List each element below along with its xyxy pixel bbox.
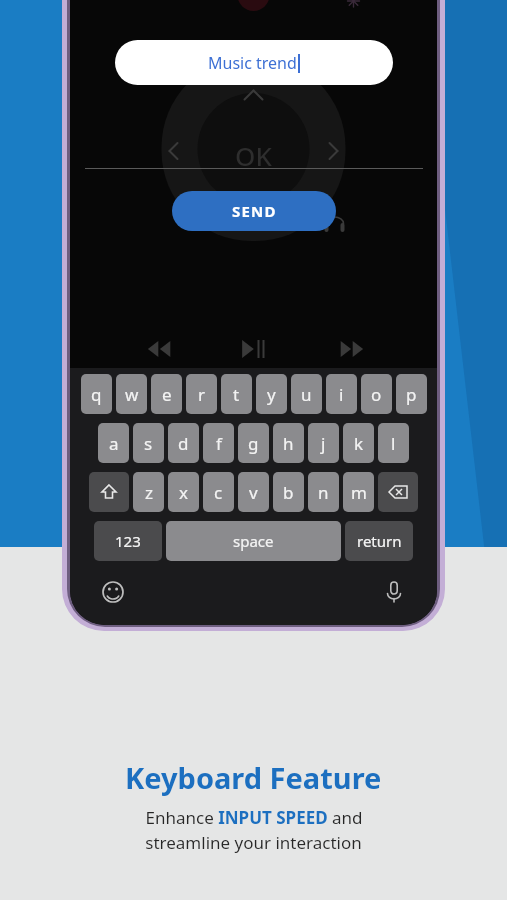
button[interactable]: t	[221, 374, 252, 414]
staticText: m	[351, 481, 367, 504]
button[interactable]: c	[203, 472, 234, 512]
staticText: u	[301, 383, 312, 406]
button[interactable]: z	[133, 472, 164, 512]
staticText: p	[406, 383, 417, 406]
staticText: r	[198, 383, 206, 406]
staticText: SEND	[232, 201, 277, 221]
staticText: b	[283, 481, 294, 504]
button[interactable]: s	[133, 423, 164, 463]
staticText: o	[371, 383, 382, 406]
button[interactable]: j	[308, 423, 339, 463]
staticText: k	[354, 432, 364, 455]
button[interactable]: w	[116, 374, 147, 414]
staticText: t	[233, 383, 240, 406]
staticText: g	[248, 432, 259, 455]
staticText: y	[267, 383, 276, 406]
button[interactable]: b	[273, 472, 304, 512]
button[interactable]: v	[238, 472, 269, 512]
button[interactable]: k	[343, 423, 374, 463]
button[interactable]: return	[345, 521, 413, 561]
staticText: j	[321, 432, 326, 455]
button[interactable]: SEND	[172, 191, 336, 231]
button[interactable]: y	[256, 374, 287, 414]
button[interactable]: m	[343, 472, 374, 512]
staticText: d	[178, 432, 189, 455]
button[interactable]: 123	[94, 521, 162, 561]
staticText: Music trend	[208, 52, 297, 74]
staticText: w	[125, 383, 139, 406]
button[interactable]: r	[186, 374, 217, 414]
button[interactable]: q	[81, 374, 112, 414]
staticText: q	[91, 383, 102, 406]
staticText: l	[391, 432, 396, 455]
staticText: v	[249, 481, 258, 504]
button[interactable]: Voice input	[377, 575, 411, 609]
button[interactable]: h	[273, 423, 304, 463]
staticText: z	[145, 481, 153, 504]
button[interactable]: Shift	[89, 472, 129, 512]
button[interactable]: i	[326, 374, 357, 414]
button[interactable]: l	[378, 423, 409, 463]
button[interactable]: d	[168, 423, 199, 463]
button[interactable]: u	[291, 374, 322, 414]
staticText: Keyboard Feature	[125, 758, 382, 797]
button[interactable]: e	[151, 374, 182, 414]
button[interactable]: o	[361, 374, 392, 414]
staticText: s	[144, 432, 153, 455]
button[interactable]: x	[168, 472, 199, 512]
button[interactable]: Backspace	[378, 472, 418, 512]
staticText: OK	[235, 138, 272, 173]
button[interactable]: space	[166, 521, 341, 561]
button[interactable]: a	[98, 423, 129, 463]
button[interactable]: Music trend	[115, 40, 393, 85]
button[interactable]: f	[203, 423, 234, 463]
staticText: space	[233, 531, 274, 551]
button[interactable]: Emoji	[96, 575, 130, 609]
staticText: x	[179, 481, 188, 504]
staticText: a	[109, 432, 119, 455]
button[interactable]: p	[396, 374, 427, 414]
button[interactable]: g	[238, 423, 269, 463]
staticText: h	[283, 432, 294, 455]
staticText: 123	[115, 531, 141, 551]
staticText: return	[357, 531, 402, 551]
staticText: Enhance INPUT SPEED and	[145, 806, 363, 829]
button[interactable]: n	[308, 472, 339, 512]
staticText: c	[214, 481, 223, 504]
staticText: f	[216, 432, 222, 455]
staticText: e	[162, 383, 172, 406]
staticText: n	[318, 481, 329, 504]
staticText: i	[339, 383, 344, 406]
staticText: streamline your interaction	[145, 831, 362, 854]
